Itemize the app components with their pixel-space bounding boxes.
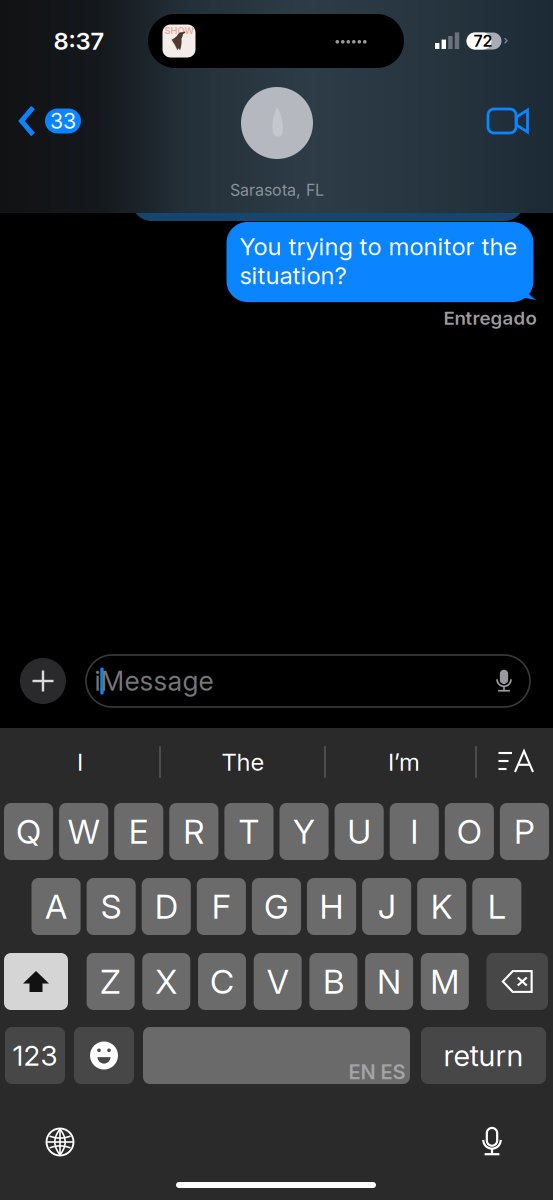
- button[interactable]: D: [142, 878, 191, 935]
- staticText: K: [431, 886, 453, 927]
- staticText: R: [183, 811, 204, 852]
- staticText: Entregado: [443, 307, 536, 329]
- button[interactable]: Y: [279, 803, 329, 860]
- button[interactable]: R: [169, 803, 218, 860]
- staticText: Y: [293, 811, 315, 852]
- staticText: EN ES: [348, 1060, 405, 1084]
- button[interactable]: F: [197, 878, 246, 935]
- button[interactable]: W: [59, 803, 108, 860]
- staticText: T: [238, 811, 259, 852]
- button[interactable]: FaceTime: [488, 108, 530, 134]
- button[interactable]: L: [472, 878, 521, 935]
- button[interactable]: Shift: [4, 953, 68, 1010]
- staticText: SHOW: [164, 25, 194, 36]
- staticText: iMessage: [94, 665, 213, 697]
- staticText: M: [430, 961, 459, 1002]
- button[interactable]: E: [114, 803, 163, 860]
- button[interactable]: Switch keyboard: [46, 1128, 73, 1155]
- button[interactable]: I: [0, 732, 160, 792]
- staticText: S: [101, 886, 122, 927]
- button[interactable]: Z: [87, 953, 135, 1010]
- button[interactable]: M: [421, 953, 469, 1010]
- button[interactable]: Back to conversations: [16, 100, 90, 142]
- button[interactable]: O: [445, 803, 494, 860]
- staticText: Q: [16, 811, 41, 852]
- button[interactable]: A: [31, 878, 81, 935]
- button[interactable]: I’m: [334, 732, 474, 792]
- button[interactable]: K: [417, 878, 466, 935]
- staticText: F: [212, 886, 231, 927]
- staticText: return: [443, 1038, 523, 1073]
- button[interactable]: C: [198, 953, 246, 1010]
- staticText: B: [323, 961, 344, 1002]
- button[interactable]: Delete: [486, 953, 548, 1010]
- button[interactable]: Add attachment: [20, 658, 66, 704]
- staticText: A: [45, 886, 67, 927]
- button[interactable]: I: [390, 803, 439, 860]
- staticText: 123: [12, 1039, 57, 1072]
- staticText: E: [129, 811, 149, 852]
- button[interactable]: Emoji: [74, 1027, 134, 1084]
- staticText: I’m: [388, 747, 420, 776]
- staticText: G: [264, 886, 289, 927]
- button[interactable]: Q: [4, 803, 53, 860]
- staticText: J: [378, 886, 396, 927]
- button[interactable]: G: [252, 878, 301, 935]
- staticText: D: [155, 886, 178, 927]
- staticText: X: [155, 961, 177, 1002]
- button[interactable]: Dictation: [477, 1126, 507, 1158]
- button[interactable]: 123: [5, 1027, 65, 1084]
- button[interactable]: T: [224, 803, 273, 860]
- staticText: You trying to monitor the situation?: [239, 232, 517, 290]
- staticText: The: [221, 747, 264, 776]
- button[interactable]: N: [365, 953, 413, 1010]
- staticText: H: [320, 886, 344, 927]
- button[interactable]: Sarasota, FL contact: [177, 87, 377, 211]
- button[interactable]: H: [307, 878, 356, 935]
- button[interactable]: B: [309, 953, 357, 1010]
- staticText: O: [457, 811, 482, 852]
- button[interactable]: U: [335, 803, 384, 860]
- staticText: 72: [473, 31, 492, 51]
- staticText: C: [210, 961, 234, 1002]
- staticText: N: [377, 961, 401, 1002]
- staticText: P: [514, 811, 535, 852]
- staticText: I: [410, 811, 418, 852]
- staticText: Z: [100, 961, 121, 1002]
- button[interactable]: S: [87, 878, 136, 935]
- button[interactable]: Text formatting: [482, 732, 552, 792]
- button[interactable]: X: [142, 953, 190, 1010]
- staticText: Sarasota, FL: [230, 180, 324, 200]
- button[interactable]: V: [254, 953, 302, 1010]
- staticText: 8:37: [53, 26, 104, 55]
- staticText: V: [267, 961, 289, 1002]
- staticText: W: [68, 811, 100, 852]
- button[interactable]: return: [421, 1027, 546, 1084]
- button[interactable]: P: [500, 803, 549, 860]
- staticText: I: [77, 747, 83, 776]
- staticText: U: [347, 811, 371, 852]
- button[interactable]: J: [362, 878, 411, 935]
- button[interactable]: Space: [143, 1027, 410, 1084]
- staticText: L: [488, 886, 506, 927]
- button[interactable]: The: [163, 732, 323, 792]
- staticText: 33: [50, 108, 76, 134]
